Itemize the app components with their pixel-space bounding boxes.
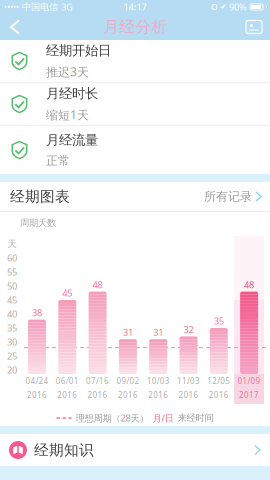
staticText: 2016 [57, 390, 77, 400]
button[interactable]: Back [0, 14, 29, 39]
staticText: 07/16 [86, 376, 109, 386]
staticText: 90% [229, 1, 247, 13]
staticText: 中国电信 [22, 1, 58, 13]
button[interactable]: 经期知识 [0, 434, 270, 466]
staticText: 25 [7, 350, 17, 362]
staticText: 35 [214, 315, 224, 327]
staticText: 经期知识 [34, 441, 94, 459]
staticText: 理想周期（28天） [75, 412, 148, 424]
staticText: 经期开始日 [46, 42, 111, 59]
staticText: 2016 [148, 390, 168, 400]
staticText: 32 [183, 323, 193, 336]
staticText: 月经流量 [46, 132, 98, 148]
staticText: 20 [7, 364, 17, 376]
staticText: 45 [62, 287, 72, 299]
staticText: 04/24 [25, 376, 48, 386]
staticText: 2016 [209, 390, 229, 400]
staticText: 正常 [46, 153, 70, 168]
staticText: 2017 [239, 390, 259, 400]
staticText: 2016 [178, 390, 198, 400]
button[interactable]: 经期开始日 [0, 40, 270, 83]
staticText: 推迟3天 [46, 64, 89, 80]
staticText: 50 [7, 280, 17, 292]
staticText: 48 [93, 278, 103, 291]
staticText: 月经分析 [103, 17, 167, 37]
staticText: 所有记录 [204, 189, 252, 204]
staticText: 01/09 [238, 376, 261, 386]
staticText: 30 [7, 336, 17, 348]
staticText: 09/02 [116, 376, 139, 386]
staticText: 45 [7, 294, 17, 306]
button[interactable]: 月经流量 [0, 126, 270, 174]
staticText: 2016 [88, 390, 108, 400]
staticText: 31 [123, 326, 133, 338]
staticText: 2016 [27, 390, 47, 400]
staticText: 55 [7, 266, 17, 278]
staticText: 10/03 [147, 376, 170, 386]
staticText: 天 [7, 238, 16, 250]
staticText: 周期天数 [20, 217, 56, 229]
staticText: 60 [7, 252, 17, 264]
staticText: 3G [61, 1, 73, 13]
button[interactable]: 所有记录 [204, 181, 261, 212]
staticText: 31 [153, 326, 163, 338]
staticText: 35 [7, 322, 17, 334]
staticText: 11/03 [177, 376, 200, 386]
staticText: 48 [244, 278, 254, 291]
staticText: 缩短1天 [46, 107, 89, 123]
staticText: 14:17 [123, 1, 146, 13]
staticText: 月/日 [152, 412, 173, 424]
button[interactable]: 月经时长 [0, 83, 270, 126]
staticText: 38 [32, 306, 42, 319]
staticText: 月经时长 [46, 85, 98, 102]
staticText: 06/01 [56, 376, 79, 386]
staticText: 2016 [118, 390, 138, 400]
staticText: ••••• [4, 2, 19, 12]
staticText: 12/05 [207, 376, 230, 386]
staticText: 来经时间 [177, 412, 213, 424]
button[interactable]: Save Image [238, 13, 270, 40]
staticText: 40 [7, 308, 17, 320]
staticText: 经期图表 [10, 187, 70, 205]
